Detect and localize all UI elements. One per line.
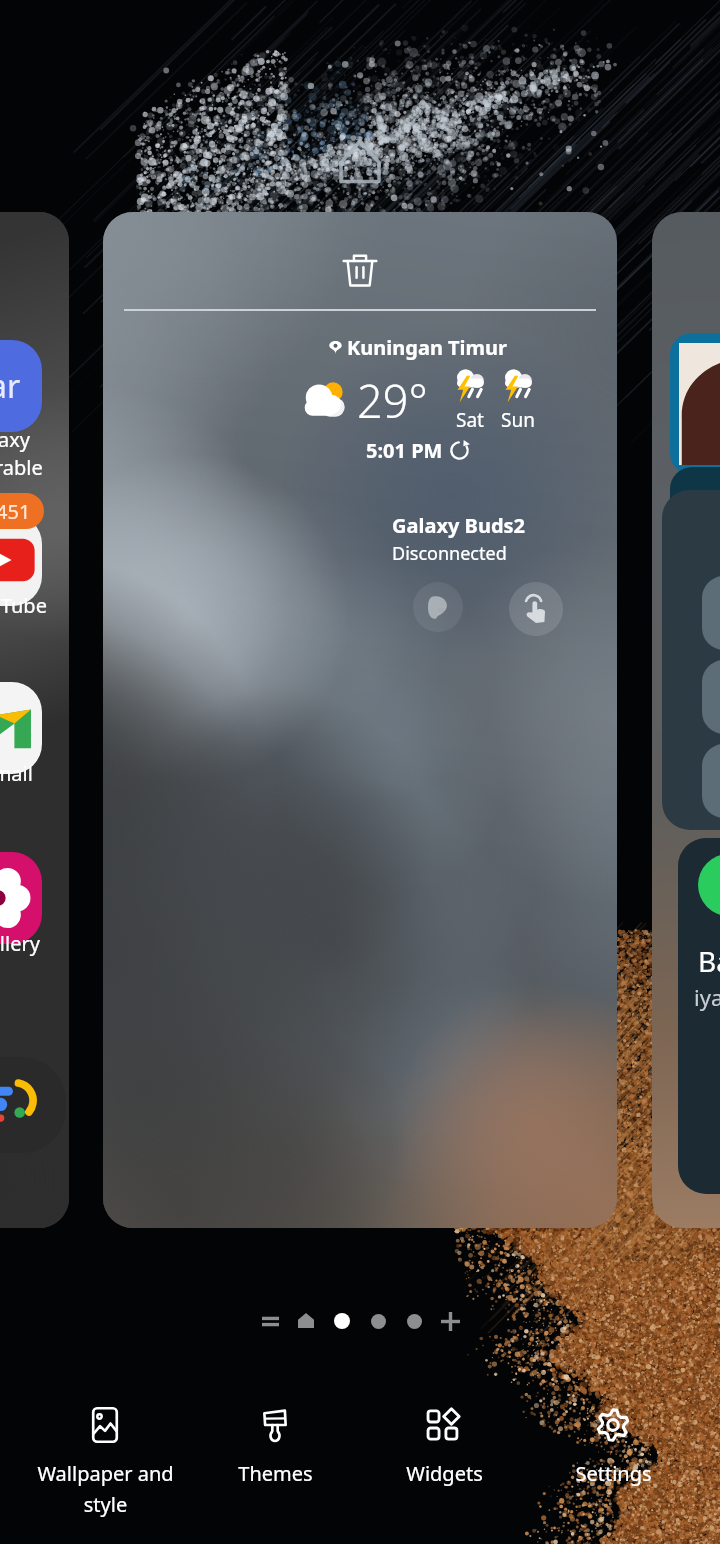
button[interactable]: Next home screen page: [652, 212, 720, 1228]
staticText: ear: [0, 364, 21, 408]
button[interactable]: Themes: [191, 1392, 359, 1540]
button[interactable]: Previous home screen page: [0, 212, 69, 1228]
staticText: Themes: [238, 1460, 313, 1487]
button[interactable]: Page 4: [363, 1306, 393, 1336]
staticText: Disconnected: [392, 541, 507, 566]
staticText: 451: [0, 498, 31, 525]
button[interactable]: Touch control: [509, 582, 563, 636]
staticText: iyaa: [694, 982, 720, 1012]
staticText: Gallery: [0, 930, 40, 957]
staticText: 29°: [357, 370, 428, 431]
button[interactable]: Settings: [529, 1392, 697, 1540]
button[interactable]: Page 3, current page: [327, 1306, 357, 1336]
staticText: Sat: [456, 407, 484, 433]
staticText: Kuningan Timur: [347, 334, 508, 361]
button[interactable]: Remove page: [329, 240, 391, 302]
staticText: 5:01 PM: [366, 437, 443, 464]
staticText: Widgets: [406, 1460, 483, 1487]
button[interactable]: Page 5: [399, 1306, 429, 1336]
button[interactable]: Add page: [435, 1306, 465, 1336]
staticText: Bal: [698, 942, 720, 980]
staticText: YouTube: [0, 592, 47, 619]
staticText: Galaxy Buds2: [392, 512, 525, 539]
button[interactable]: All pages: [255, 1306, 285, 1336]
staticText: Sun: [501, 407, 535, 433]
staticText: Settings: [575, 1460, 652, 1487]
staticText: Galaxy Wearable: [0, 426, 43, 481]
button[interactable]: Wallpaper and style: [21, 1392, 189, 1540]
button[interactable]: Earbud: [413, 582, 463, 632]
button[interactable]: Home screen page preview: [103, 212, 617, 1228]
button[interactable]: Main home screen: [291, 1306, 321, 1336]
button[interactable]: Widgets: [360, 1392, 528, 1540]
staticText: Wallpaper and style: [37, 1460, 174, 1517]
staticText: Gmail: [0, 760, 33, 787]
